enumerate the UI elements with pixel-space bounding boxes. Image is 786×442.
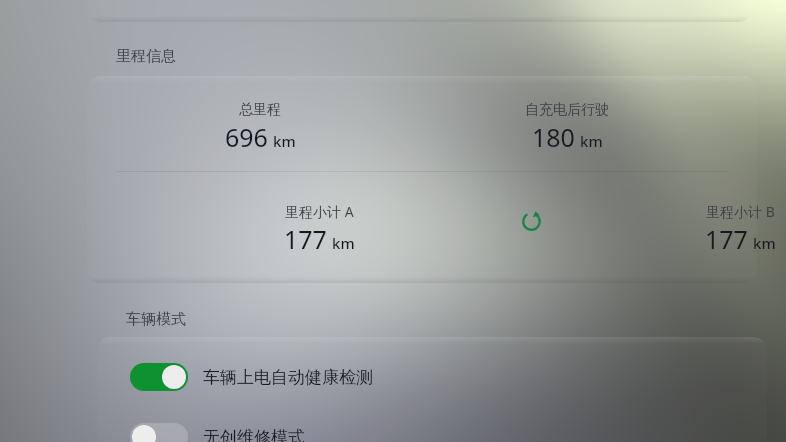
staticText: 车辆模式 [126, 310, 186, 329]
staticText: km [580, 131, 603, 151]
button[interactable]: Switch off [130, 423, 188, 442]
staticText: 无创维修模式 [203, 427, 305, 442]
staticText: 里程小计 B [706, 202, 775, 221]
staticText: 696 [225, 120, 268, 154]
button[interactable]: Switch off [130, 423, 305, 442]
staticText: 177 [284, 222, 327, 256]
staticText: 总里程 [239, 101, 281, 119]
staticText: 自充电后行驶 [525, 101, 609, 119]
staticText: km [332, 233, 355, 253]
staticText: 180 [532, 120, 575, 154]
staticText: 177 [705, 222, 748, 256]
button[interactable]: Reset trip A [513, 203, 549, 239]
staticText: 车辆上电自动健康检测 [203, 367, 373, 388]
button[interactable]: Switch on [130, 363, 188, 391]
staticText: 里程信息 [116, 47, 176, 66]
staticText: km [753, 233, 776, 253]
staticText: km [273, 131, 296, 151]
button[interactable]: Switch on [130, 363, 373, 391]
staticText: 里程小计 A [285, 202, 354, 221]
